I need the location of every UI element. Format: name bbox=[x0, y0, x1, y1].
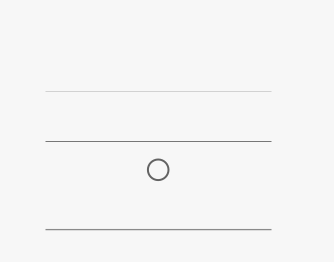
button[interactable]: Select bbox=[136, 148, 180, 192]
